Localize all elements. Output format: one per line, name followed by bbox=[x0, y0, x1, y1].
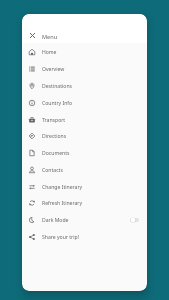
button[interactable]: Refresh Itinerary bbox=[22, 194, 147, 211]
staticText: Directions bbox=[42, 133, 67, 140]
staticText: Documents bbox=[42, 150, 70, 157]
staticText: Home bbox=[42, 49, 57, 56]
staticText: Country Info bbox=[42, 100, 73, 107]
button[interactable]: Destinations bbox=[22, 77, 147, 94]
button[interactable]: Close menu bbox=[22, 27, 147, 44]
staticText: Change Itinerary bbox=[42, 184, 83, 191]
button[interactable]: Documents bbox=[22, 144, 147, 161]
button[interactable]: Overview bbox=[22, 60, 147, 77]
button[interactable]: Home bbox=[22, 43, 147, 60]
staticText: Refresh Itinerary bbox=[42, 200, 83, 207]
staticText: Menu bbox=[42, 33, 58, 41]
staticText: Dark Mode bbox=[42, 217, 69, 224]
button[interactable]: Contacts bbox=[22, 161, 147, 178]
staticText: Overview bbox=[42, 66, 65, 73]
button[interactable]: Change Itinerary bbox=[22, 178, 147, 195]
staticText: Transport bbox=[42, 117, 66, 124]
button[interactable]: Directions bbox=[22, 127, 147, 144]
button[interactable]: Share your trip! bbox=[22, 228, 147, 245]
button[interactable]: Close menu bbox=[22, 27, 42, 44]
staticText: Share your trip! bbox=[42, 234, 80, 241]
button[interactable]: Dark Mode bbox=[22, 211, 147, 228]
button[interactable]: Country Info bbox=[22, 94, 147, 111]
staticText: Destinations bbox=[42, 83, 73, 90]
staticText: Contacts bbox=[42, 167, 63, 174]
button[interactable]: Transport bbox=[22, 111, 147, 128]
